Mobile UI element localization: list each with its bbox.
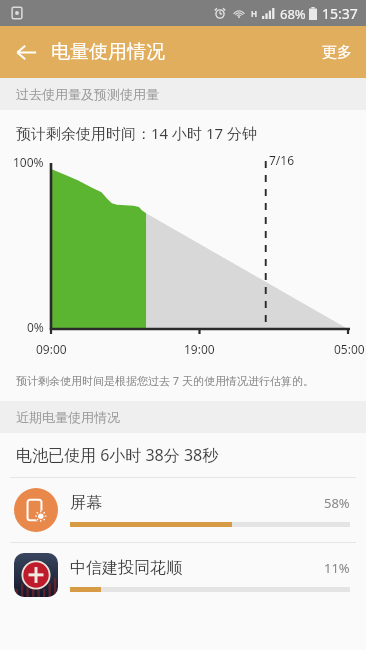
staticText: 19:00 [184, 341, 215, 357]
staticText: 中信建投同花顺 [70, 558, 324, 578]
staticText: 09:00 [36, 341, 67, 357]
staticText: 更多 [322, 43, 352, 62]
staticText: 58% [324, 494, 350, 512]
staticText: 过去使用量及预测使用量 [16, 86, 159, 102]
staticText: 100% [13, 154, 44, 170]
staticText: H [251, 8, 258, 19]
staticText: 68% [280, 5, 306, 23]
staticText: 电量使用情况 [51, 40, 165, 64]
button[interactable]: 更多 [308, 30, 366, 75]
staticText: 近期电量使用情况 [16, 409, 120, 425]
button[interactable]: 返回 [3, 29, 49, 75]
button[interactable]: 中信建投同花顺 [0, 543, 366, 607]
staticText: 15:37 [322, 4, 358, 23]
staticText: 电池已使用 6小时 38分 38秒 [16, 444, 219, 466]
staticText: 7/16 [269, 152, 295, 168]
staticText: 屏幕 [70, 493, 324, 513]
staticText: 0% [27, 319, 44, 335]
staticText: 预计剩余使用时间是根据您过去 7 天的使用情况进行估算的。 [16, 373, 315, 388]
staticText: 05:00 [334, 341, 365, 357]
staticText: 预计剩余使用时间：14 小时 17 分钟 [16, 123, 258, 143]
staticText: 11% [324, 559, 350, 577]
button[interactable]: 屏幕 [0, 478, 366, 542]
